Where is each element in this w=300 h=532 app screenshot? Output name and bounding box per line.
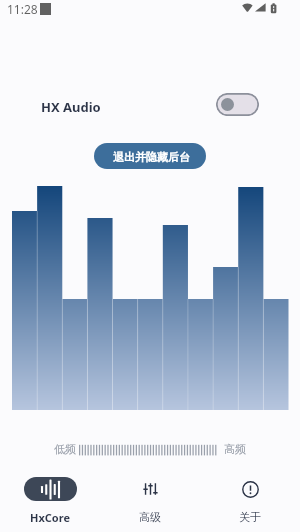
button[interactable]: Advanced: [100, 475, 200, 532]
button[interactable]: 退出并隐藏后台: [94, 143, 206, 169]
staticText: HxCore: [30, 510, 70, 525]
staticText: 关于: [239, 510, 261, 524]
staticText: 高频: [224, 442, 246, 456]
button[interactable]: HxCore: [0, 475, 100, 532]
staticText: 低频: [54, 442, 76, 456]
button[interactable]: About: [200, 475, 300, 532]
other: Advanced: [143, 483, 158, 495]
other: HxCore: [41, 479, 60, 500]
staticText: 11:28: [7, 1, 38, 17]
button[interactable]: Toggle HX Audio: [216, 93, 259, 116]
staticText: HX Audio: [41, 98, 101, 116]
staticText: 退出并隐藏后台: [113, 150, 190, 164]
staticText: 高级: [139, 510, 161, 524]
other: About: [242, 481, 259, 498]
